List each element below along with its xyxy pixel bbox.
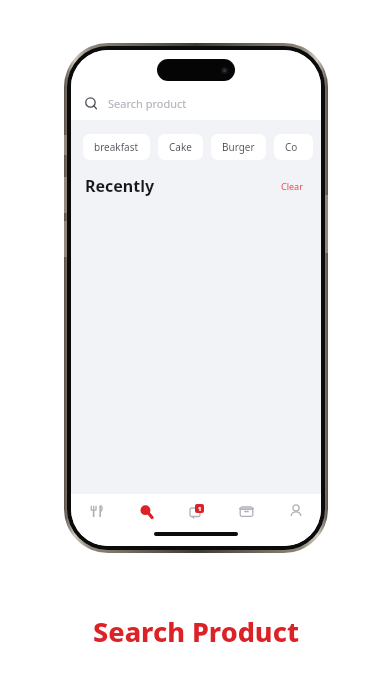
staticText: Recently: [85, 175, 155, 197]
staticText: 1: [198, 505, 202, 513]
button[interactable]: Cookies: [274, 134, 313, 160]
button[interactable]: Burger: [211, 134, 266, 160]
button[interactable]: Store: [221, 494, 271, 528]
staticText: Clear: [281, 180, 303, 192]
button[interactable]: Clear: [277, 176, 307, 196]
staticText: Cookies: [285, 140, 302, 154]
staticText: Cake: [169, 140, 192, 154]
button[interactable]: breakfast: [83, 134, 150, 160]
button[interactable]: Messages: [171, 494, 221, 528]
button[interactable]: Search product: [71, 86, 321, 120]
button[interactable]: Cake: [158, 134, 203, 160]
button[interactable]: Profile: [271, 494, 321, 528]
staticText: breakfast: [94, 140, 139, 154]
staticText: Burger: [222, 140, 255, 154]
staticText: Search Product: [93, 613, 299, 650]
staticText: Search product: [108, 96, 187, 111]
button[interactable]: Search: [121, 494, 171, 528]
button[interactable]: Restaurants: [71, 494, 121, 528]
